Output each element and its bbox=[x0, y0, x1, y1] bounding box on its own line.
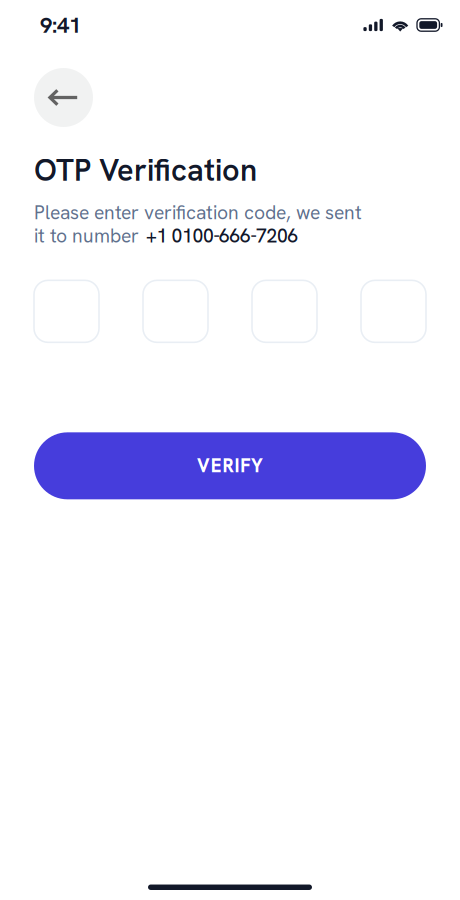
staticText: Please enter verification code, we sent bbox=[34, 200, 362, 225]
staticText: 9:41 bbox=[40, 11, 81, 39]
button[interactable]: Back bbox=[34, 68, 93, 127]
button[interactable]: Digit field bbox=[252, 280, 317, 342]
button[interactable]: Digit field bbox=[143, 280, 208, 342]
staticText: it to number bbox=[34, 223, 139, 248]
staticText: OTP Verification bbox=[34, 150, 257, 190]
button[interactable]: Digit field bbox=[34, 280, 99, 342]
button[interactable]: VERIFY bbox=[34, 432, 426, 499]
button[interactable]: Digit field bbox=[361, 280, 426, 342]
staticText: VERIFY bbox=[197, 454, 263, 478]
staticText: +1 0100-666-7206 bbox=[146, 223, 298, 248]
